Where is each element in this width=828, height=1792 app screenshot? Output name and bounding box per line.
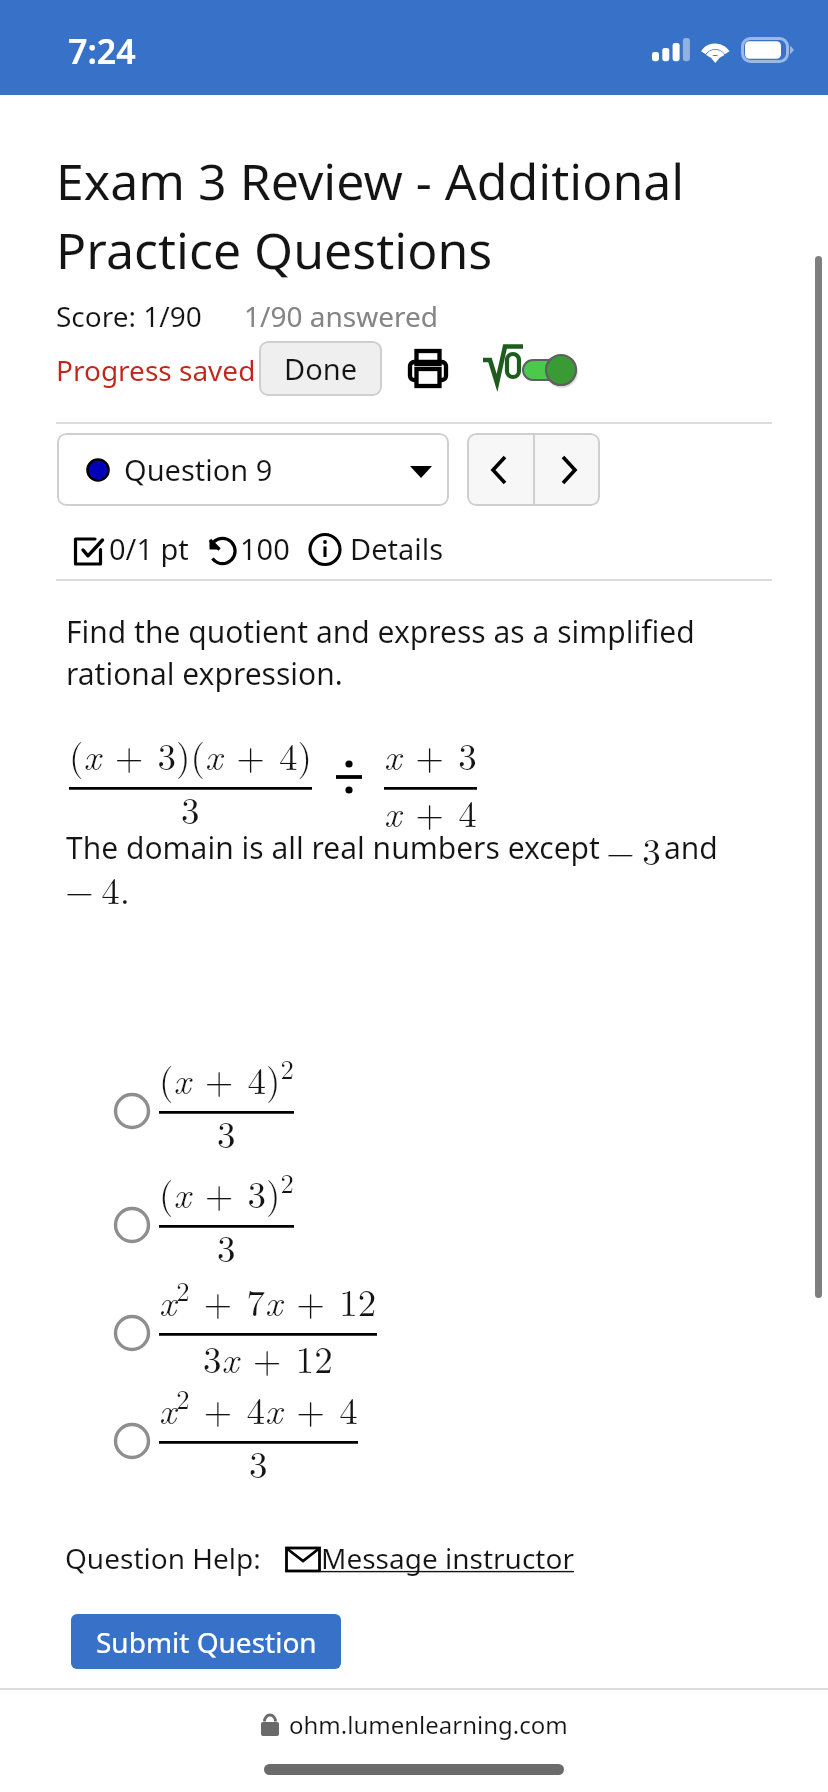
button[interactable]: x2 + 7x + 12 <box>114 1273 377 1369</box>
staticText: x2 + 4x + 4 <box>159 1379 358 1437</box>
staticText: Details <box>350 529 444 568</box>
button[interactable]: Message instructor <box>285 1539 574 1577</box>
staticText: 3 <box>217 1106 236 1158</box>
staticText: 0/1 pt <box>109 529 189 568</box>
staticText: 3 <box>249 1436 268 1488</box>
staticText: Progress saved <box>56 351 256 389</box>
staticText: and <box>664 827 718 868</box>
staticText: 3 <box>181 782 200 834</box>
staticText: 3 <box>217 1220 236 1272</box>
staticText: x + 4 <box>384 782 477 840</box>
staticText: − 3 <box>606 823 661 875</box>
button[interactable]: Previous question <box>467 433 533 506</box>
staticText: Message instructor <box>321 1539 574 1577</box>
staticText: Done <box>284 349 357 388</box>
staticText: Exam 3 Review - Additional Practice Ques… <box>56 147 685 284</box>
staticText: 3x + 12 <box>203 1328 333 1386</box>
button[interactable]: Math keyboard toggle <box>476 340 588 396</box>
staticText: Question 9 <box>124 450 273 489</box>
button[interactable]: Submit Question <box>71 1614 341 1669</box>
staticText: (x + 4)2 <box>159 1049 294 1107</box>
button[interactable]: Question 9 <box>57 433 449 506</box>
staticText: 1/90 answered <box>244 297 438 335</box>
staticText: 7:24 <box>68 28 136 74</box>
button[interactable]: (x + 4)2 <box>114 1051 294 1147</box>
button[interactable]: Done <box>259 341 382 396</box>
staticText: x + 3 <box>384 725 477 783</box>
staticText: (x + 3)2 <box>159 1163 294 1221</box>
staticText: x2 + 7x + 12 <box>159 1271 377 1329</box>
button[interactable]: x2 + 4x + 4 <box>114 1381 358 1477</box>
staticText: The domain is all real numbers except <box>66 827 600 868</box>
staticText: ohm.lumenlearning.com <box>289 1708 568 1741</box>
staticText: Find the quotient and express as a simpl… <box>66 611 695 694</box>
staticText: Question Help: <box>65 1539 261 1577</box>
staticText: − 4. <box>65 862 130 914</box>
staticText: 100 <box>240 529 290 568</box>
staticText: Submit Question <box>96 1623 317 1661</box>
button[interactable]: Next question <box>535 433 600 506</box>
staticText: Score: 1/90 <box>56 297 202 335</box>
staticText: (x + 3)(x + 4) <box>69 725 312 783</box>
button[interactable]: Print <box>403 340 453 396</box>
button[interactable]: (x + 3)2 <box>114 1165 294 1261</box>
